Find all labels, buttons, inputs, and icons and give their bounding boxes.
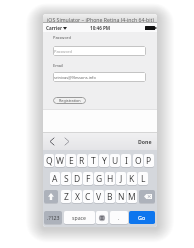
button[interactable]: space [64, 211, 95, 224]
button[interactable]: Password [53, 46, 146, 56]
staticText: G [96, 173, 103, 185]
button[interactable]: O [133, 154, 143, 167]
staticText: Password [53, 35, 71, 40]
button[interactable]: C [83, 190, 93, 203]
button[interactable]: V [94, 190, 104, 203]
button[interactable]: I [121, 154, 131, 167]
staticText: R [79, 155, 85, 167]
button[interactable]: B [105, 190, 115, 203]
staticText: T [91, 155, 96, 167]
staticText: A [52, 173, 58, 185]
staticText: X [75, 191, 80, 203]
staticText: E [69, 155, 74, 167]
button[interactable]: P [144, 154, 154, 167]
staticText: P [146, 155, 152, 167]
button[interactable]: H [105, 172, 115, 185]
staticText: Q [46, 155, 53, 167]
button[interactable]: U [110, 154, 120, 167]
staticText: space [72, 214, 87, 221]
button[interactable]: Shift [44, 190, 58, 203]
button[interactable]: X [72, 190, 82, 203]
button[interactable]: Previous field [46, 136, 57, 147]
button[interactable]: J [116, 172, 126, 185]
staticText: H [107, 173, 114, 185]
button[interactable]: R [77, 154, 87, 167]
button[interactable]: . [110, 211, 128, 224]
staticText: J [120, 173, 123, 185]
staticText: iOS Simulator – iPhone Retina (4-inch 64… [47, 16, 154, 23]
staticText: U [112, 155, 119, 167]
staticText: Registration [59, 98, 81, 103]
staticText: V [96, 191, 102, 203]
button[interactable]: Backspace [139, 190, 155, 203]
button[interactable]: Next field [61, 136, 72, 147]
button[interactable]: Go [129, 211, 155, 224]
button[interactable]: W [55, 154, 65, 167]
staticText: Password [54, 49, 72, 54]
staticText: K [129, 173, 135, 185]
button[interactable]: A [50, 172, 60, 185]
staticText: srinivas@9lessons.info [54, 75, 96, 80]
button[interactable]: G [94, 172, 104, 185]
button[interactable]: N [116, 190, 126, 203]
staticText: Email [53, 63, 64, 68]
staticText: Z [64, 191, 69, 203]
button[interactable]: Done [138, 138, 152, 145]
staticText: Y [102, 155, 107, 167]
staticText: F [86, 173, 91, 185]
button[interactable]: M [127, 190, 137, 203]
staticText: Carrier [46, 25, 62, 31]
button[interactable]: K [127, 172, 137, 185]
staticText: D [74, 173, 81, 185]
staticText: L [141, 173, 146, 185]
staticText: B [107, 191, 113, 203]
staticText: .?123 [47, 214, 60, 221]
button[interactable]: Registration [53, 97, 86, 104]
button[interactable]: Change keyboard [96, 211, 108, 224]
button[interactable]: Y [99, 154, 109, 167]
staticText: C [85, 191, 91, 203]
button[interactable]: srinivas@9lessons.info [53, 72, 146, 82]
button[interactable]: E [66, 154, 76, 167]
staticText: Done [138, 138, 152, 145]
button[interactable]: Z [61, 190, 71, 203]
staticText: Go [138, 214, 146, 221]
staticText: . [118, 214, 120, 221]
button[interactable]: L [138, 172, 148, 185]
staticText: M [128, 191, 136, 203]
button[interactable]: .?123 [44, 211, 62, 224]
staticText: S [64, 173, 69, 185]
staticText: O [135, 155, 142, 167]
staticText: I [125, 155, 128, 167]
button[interactable]: Q [44, 154, 54, 167]
staticText: W [56, 155, 64, 167]
staticText: N [118, 191, 125, 203]
button[interactable]: S [61, 172, 71, 185]
button[interactable]: T [88, 154, 98, 167]
button[interactable]: D [72, 172, 82, 185]
button[interactable]: F [83, 172, 93, 185]
staticText: 10:46 PM [90, 25, 111, 31]
